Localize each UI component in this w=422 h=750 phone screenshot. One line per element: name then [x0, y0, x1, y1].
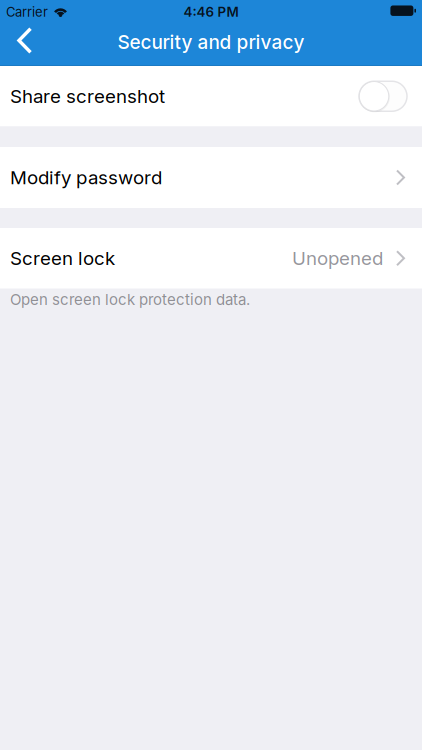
button[interactable]: Back: [0, 24, 42, 66]
button[interactable]: Modify password: [0, 147, 422, 208]
staticText: Open screen lock protection data.: [10, 290, 250, 309]
staticText: Share screenshot: [10, 85, 165, 108]
staticText: Screen lock: [10, 247, 115, 270]
staticText: Security and privacy: [117, 31, 304, 54]
staticText: Carrier: [6, 4, 48, 20]
button[interactable]: Share screenshot: [359, 81, 407, 111]
staticText: 4:46 PM: [183, 4, 238, 20]
staticText: Unopened: [292, 247, 383, 270]
button[interactable]: Screen lock: [0, 228, 422, 288]
staticText: Modify password: [10, 166, 162, 189]
